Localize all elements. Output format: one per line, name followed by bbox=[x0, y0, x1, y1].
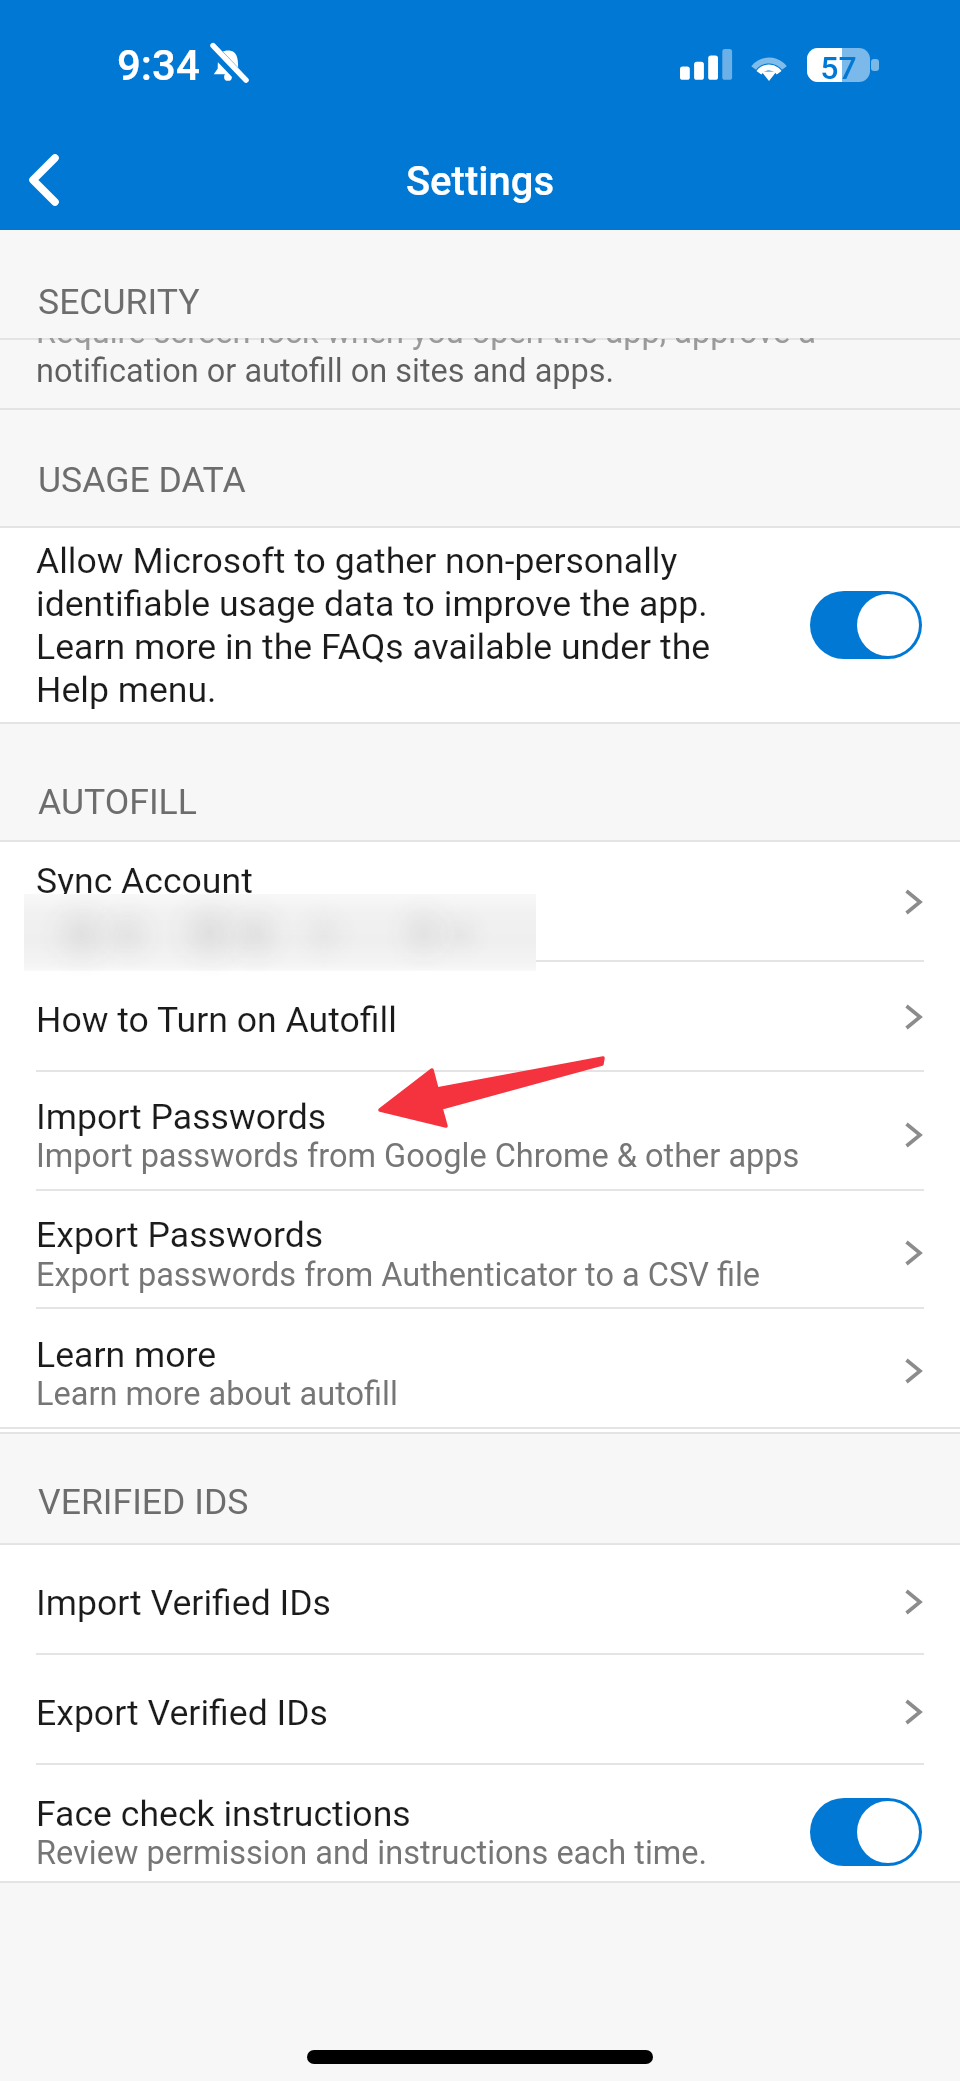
button[interactable] bbox=[0, 1545, 960, 1653]
button[interactable] bbox=[0, 528, 960, 722]
button[interactable]: Toggle setting bbox=[810, 591, 922, 659]
staticText: Review permission and instructions each … bbox=[36, 1834, 708, 1872]
staticText: USAGE DATA bbox=[38, 459, 246, 501]
staticText: Sync Account bbox=[36, 860, 253, 902]
button[interactable] bbox=[0, 1765, 960, 1881]
staticText: Help menu. bbox=[36, 669, 217, 711]
staticText: 57 bbox=[807, 49, 870, 87]
button[interactable] bbox=[0, 842, 960, 960]
staticText: Allow Microsoft to gather non-personally bbox=[36, 540, 678, 582]
button[interactable] bbox=[0, 962, 960, 1070]
staticText: Export Verified IDs bbox=[36, 1692, 328, 1734]
staticText: Import Passwords bbox=[36, 1096, 327, 1138]
button[interactable] bbox=[0, 1309, 960, 1427]
staticText: Learn more about autofill bbox=[36, 1375, 398, 1413]
button[interactable] bbox=[0, 1191, 960, 1307]
staticText: Learn more in the FAQs available under t… bbox=[36, 626, 711, 668]
staticText: 9:34 bbox=[117, 41, 200, 90]
staticText: AUTOFILL bbox=[38, 781, 197, 823]
staticText: Settings bbox=[0, 158, 960, 205]
staticText: Face check instructions bbox=[36, 1793, 411, 1835]
button[interactable]: Toggle setting bbox=[810, 1798, 922, 1866]
staticText: SECURITY bbox=[38, 281, 200, 323]
button[interactable]: Back bbox=[8, 144, 80, 216]
button[interactable] bbox=[0, 1655, 960, 1763]
button[interactable] bbox=[0, 1072, 960, 1189]
staticText: How to Turn on Autofill bbox=[36, 999, 397, 1041]
staticText: Export Passwords bbox=[36, 1214, 324, 1256]
staticText: Require screen lock when you open the ap… bbox=[36, 338, 816, 351]
staticText: notification or autofill on sites and ap… bbox=[36, 352, 615, 390]
staticText: Export passwords from Authenticator to a… bbox=[36, 1256, 761, 1294]
staticText: VERIFIED IDS bbox=[38, 1481, 249, 1523]
staticText: identifiable usage data to improve the a… bbox=[36, 583, 708, 625]
staticText: Import Verified IDs bbox=[36, 1582, 331, 1624]
staticText: Import passwords from Google Chrome & ot… bbox=[36, 1137, 800, 1175]
staticText: Learn more bbox=[36, 1334, 217, 1376]
